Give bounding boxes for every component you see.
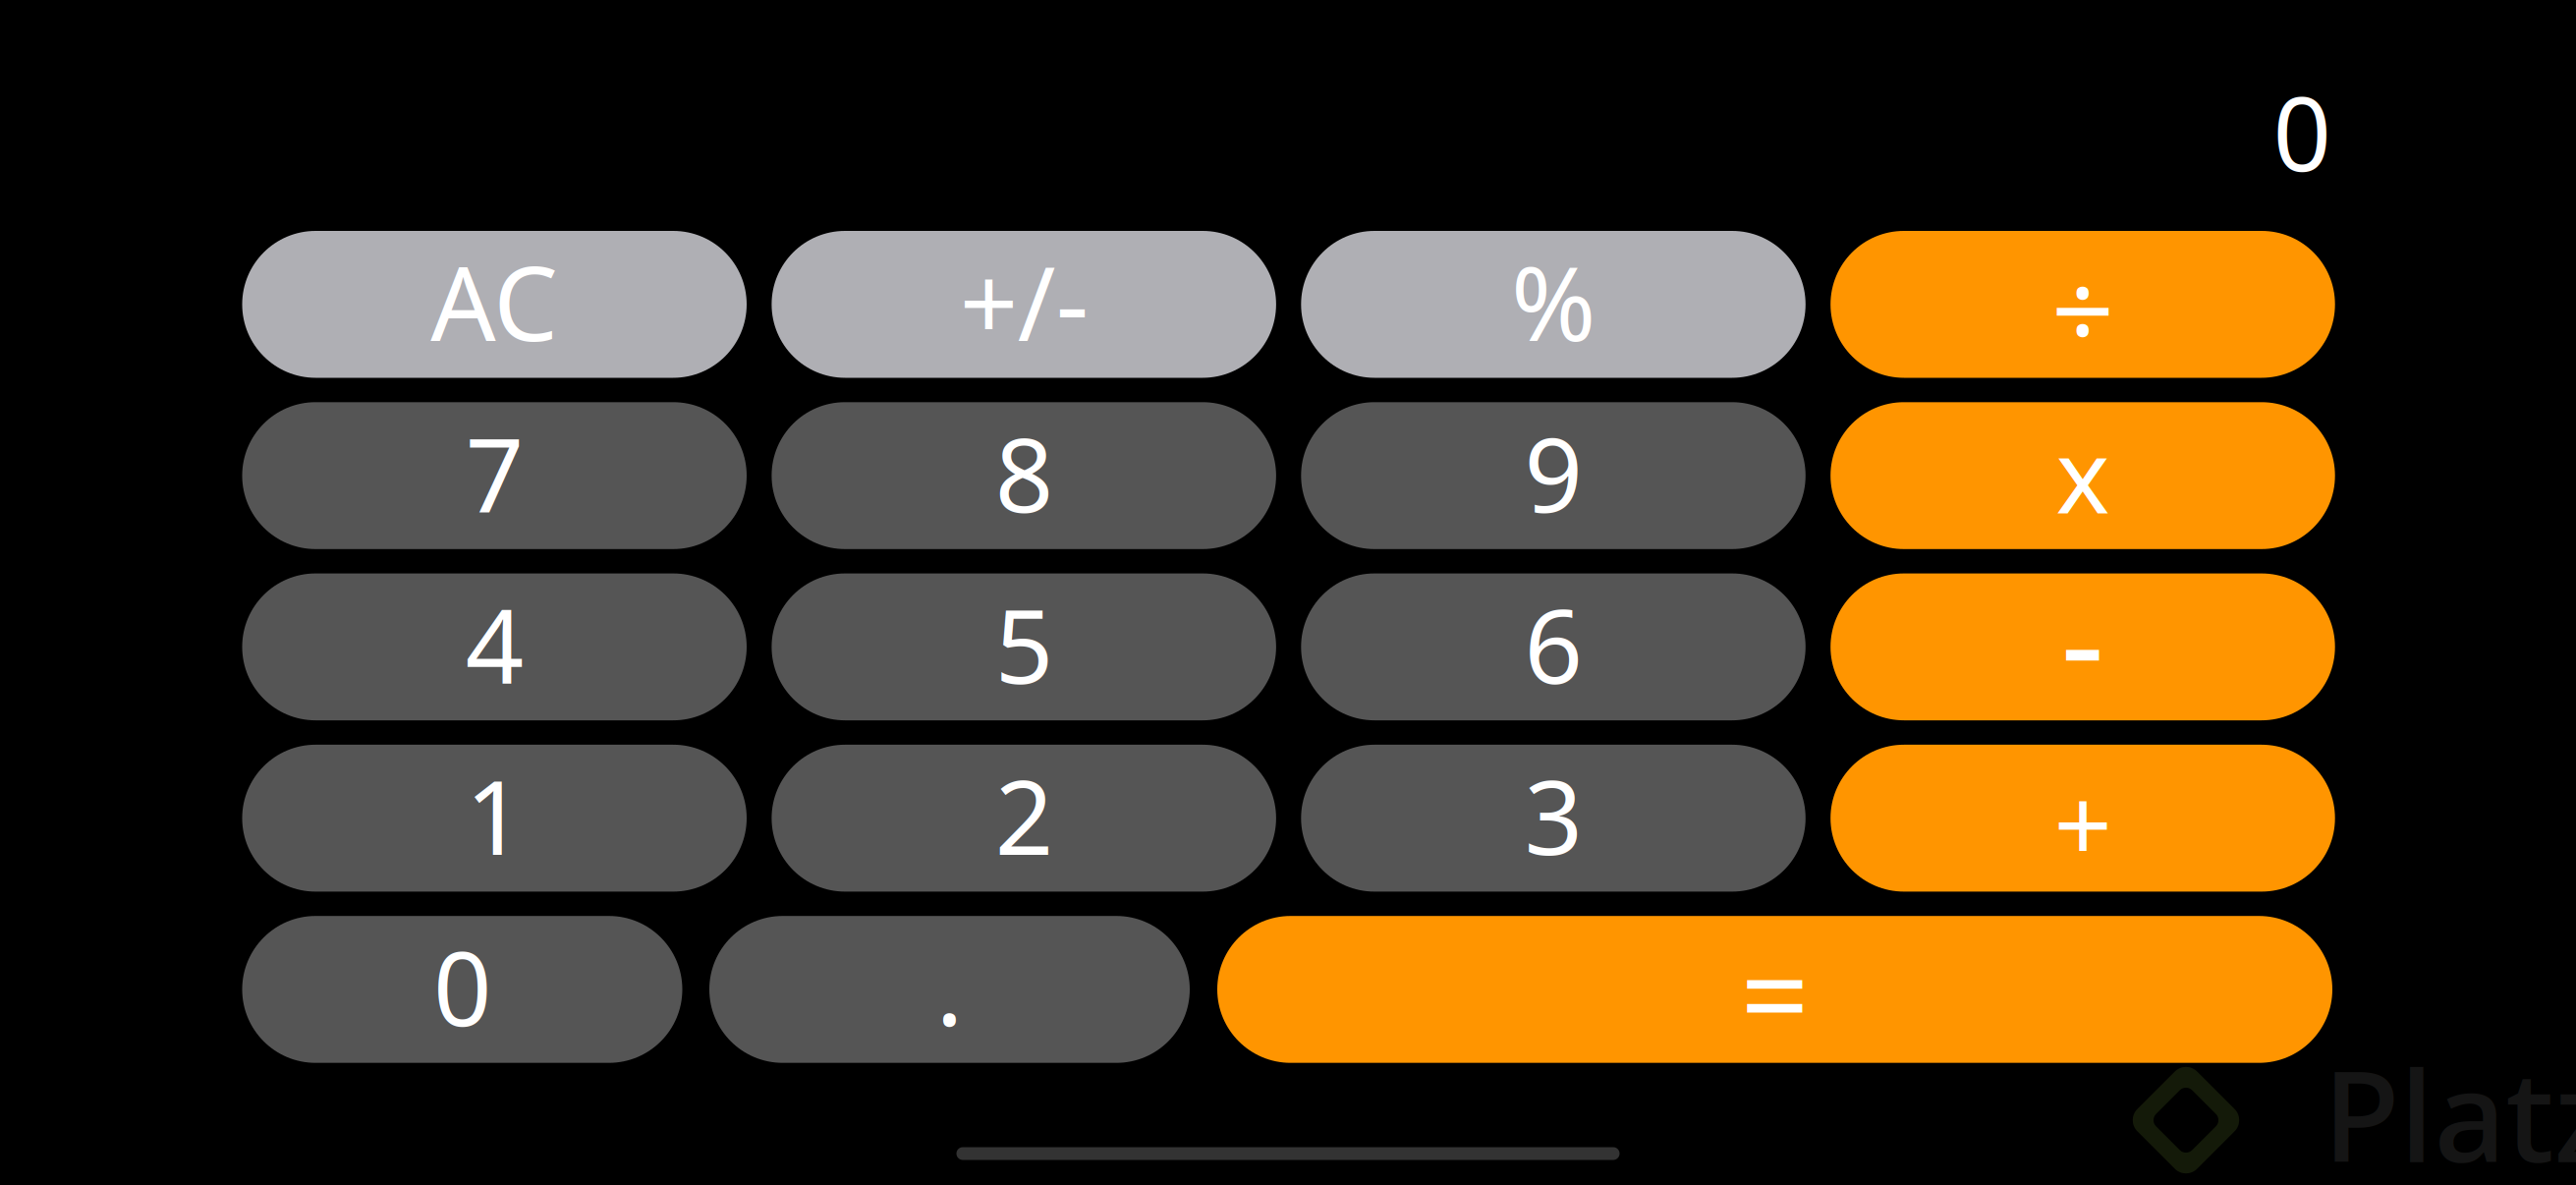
staticText: 1: [465, 747, 523, 883]
staticText: 8: [995, 405, 1053, 541]
button[interactable]: Three: [1301, 745, 1806, 892]
button[interactable]: Equals: [1217, 916, 2332, 1063]
button[interactable]: Percent: [1301, 231, 1806, 378]
staticText: 9: [1524, 405, 1582, 541]
button[interactable]: Minus: [1831, 573, 2335, 720]
staticText: -: [2061, 549, 2105, 729]
staticText: 0: [433, 919, 491, 1054]
button[interactable]: Six: [1301, 573, 1806, 720]
button[interactable]: Divide: [1831, 231, 2335, 378]
staticText: 3: [1524, 747, 1582, 883]
staticText: +/-: [960, 234, 1088, 369]
button[interactable]: Four: [242, 573, 747, 720]
button[interactable]: Seven: [242, 402, 747, 549]
button[interactable]: Eight: [772, 402, 1276, 549]
button[interactable]: Toggle sign: [772, 231, 1276, 378]
button[interactable]: Multiply: [1831, 402, 2335, 549]
button[interactable]: Nine: [1301, 402, 1806, 549]
staticText: =: [1740, 912, 1809, 1072]
staticText: 5: [995, 576, 1053, 712]
button[interactable]: Plus: [1831, 745, 2335, 892]
staticText: AC: [431, 234, 558, 369]
staticText: 0: [2273, 64, 2331, 199]
staticText: ÷: [2051, 235, 2114, 381]
button[interactable]: Five: [772, 573, 1276, 720]
staticText: 4: [465, 576, 523, 712]
staticText: 6: [1524, 576, 1582, 712]
staticText: x: [2056, 406, 2110, 542]
staticText: %: [1511, 234, 1596, 369]
button[interactable]: One: [242, 745, 747, 892]
button[interactable]: Two: [772, 745, 1276, 892]
button[interactable]: Decimal point: [709, 916, 1190, 1063]
staticText: 2: [995, 747, 1053, 883]
staticText: 7: [465, 405, 523, 541]
button[interactable]: Zero: [242, 916, 682, 1063]
staticText: +: [2054, 755, 2112, 891]
button[interactable]: All clear: [242, 231, 747, 378]
staticText: .: [936, 919, 963, 1054]
staticText: Platzi: [2323, 1030, 2576, 1185]
